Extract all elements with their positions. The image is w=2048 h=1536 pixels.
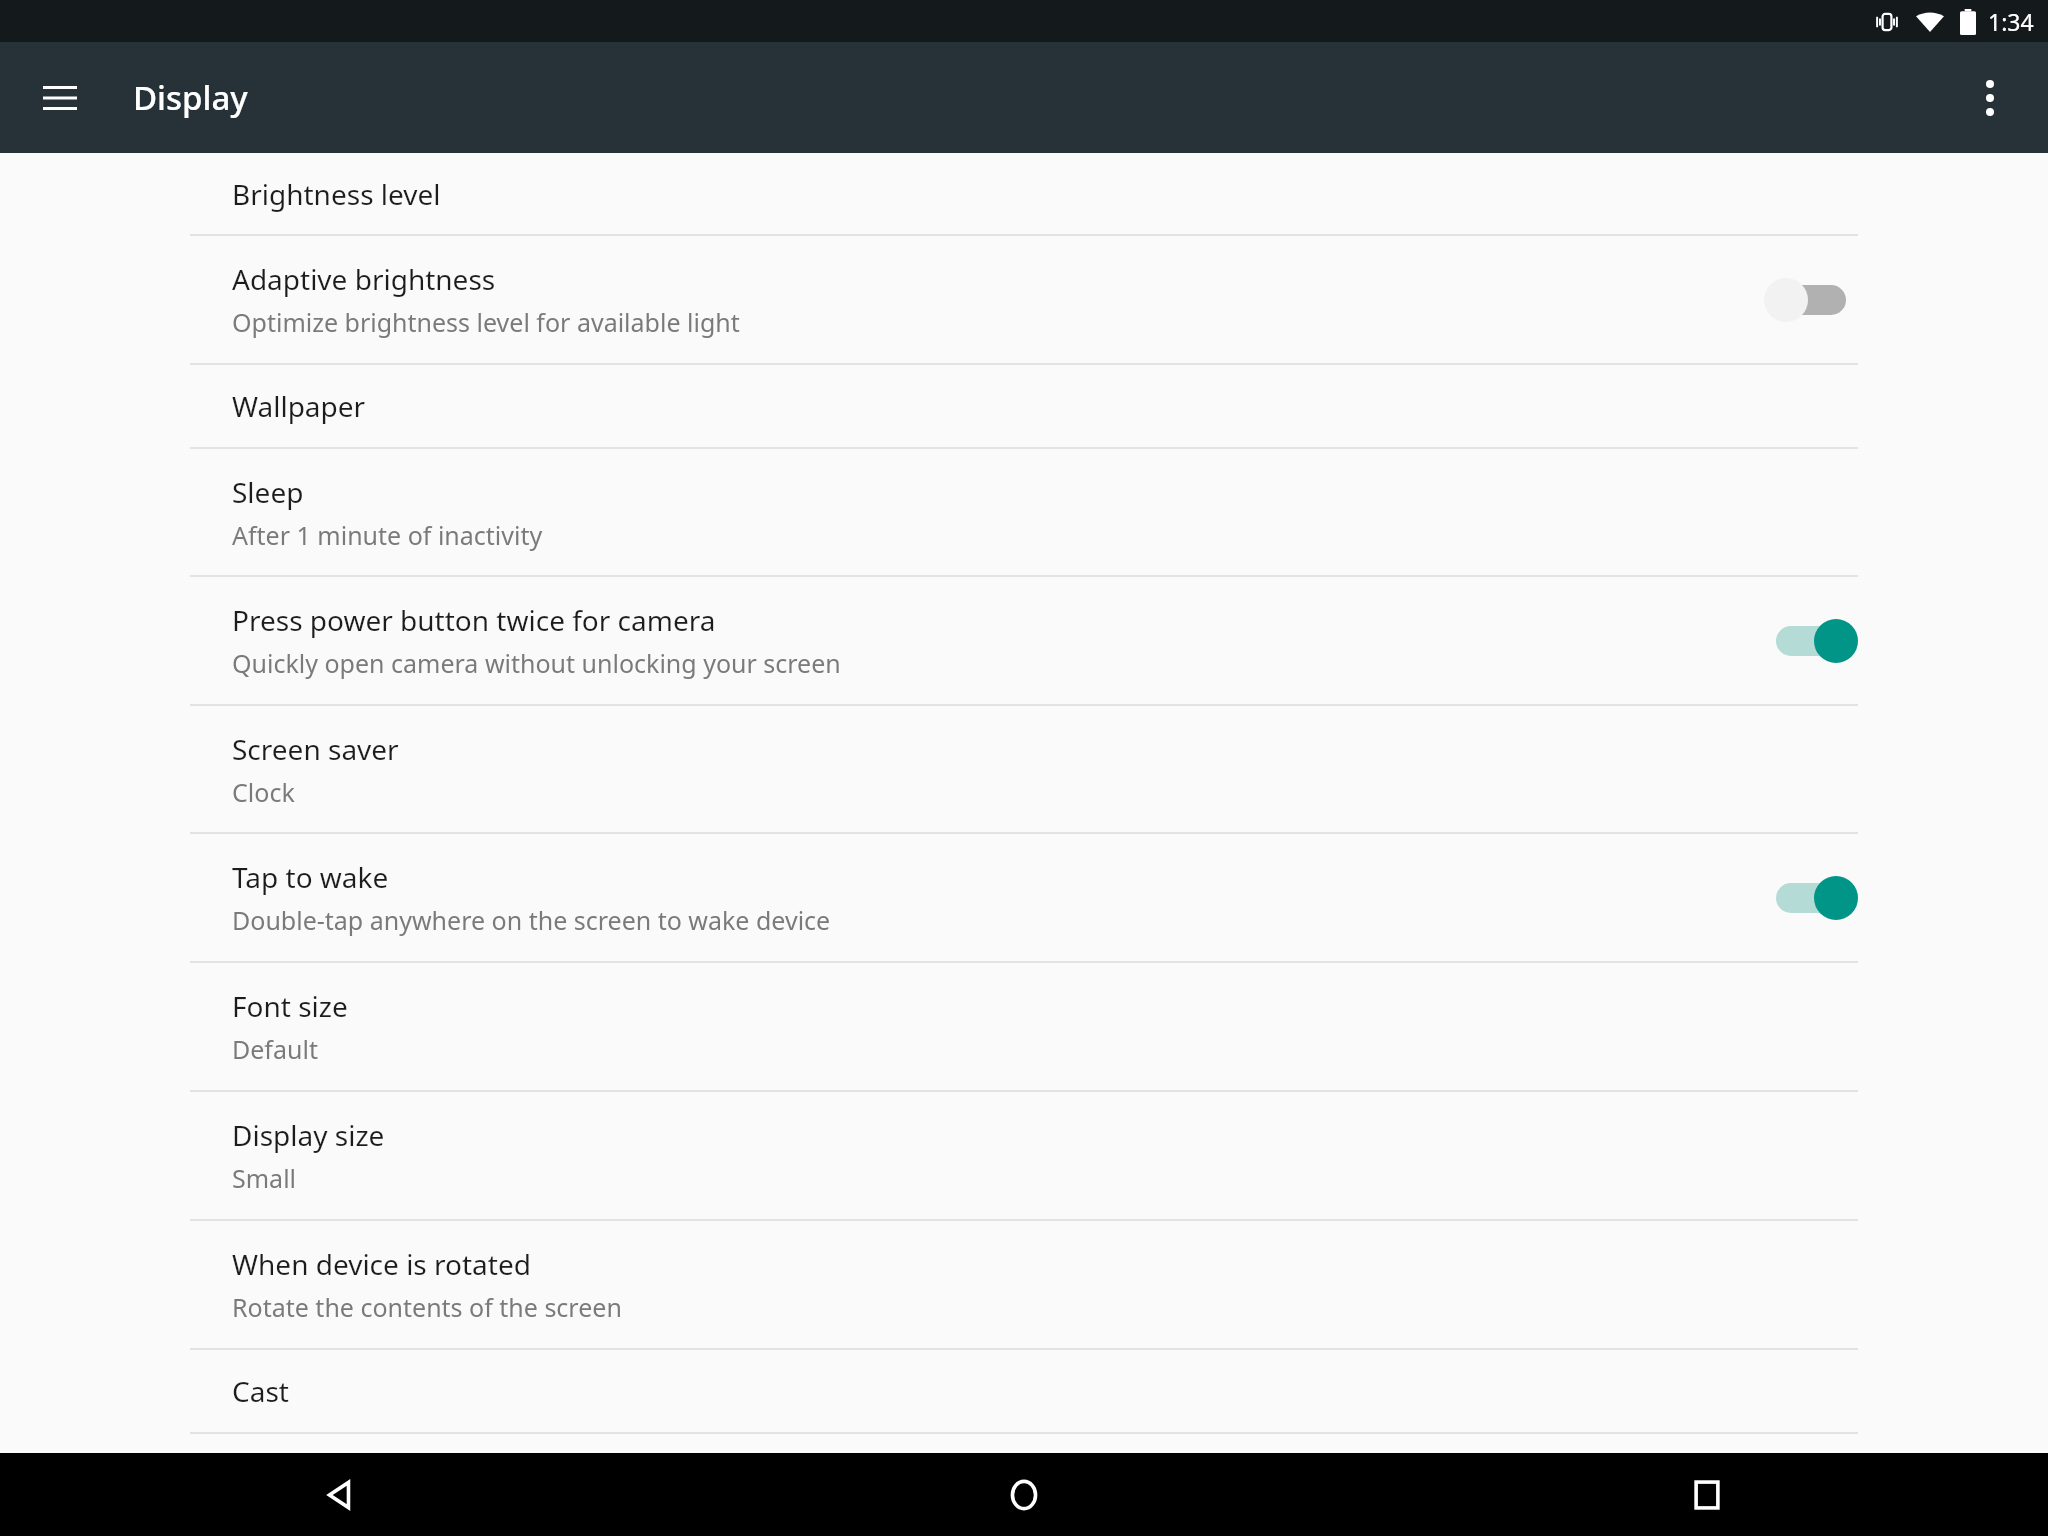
staticText: Wallpaper: [232, 387, 366, 425]
staticText: 1:34: [1988, 6, 2034, 37]
staticText: Press power button twice for camera: [232, 601, 716, 639]
button[interactable]: Toggle on: [1764, 870, 1858, 926]
button[interactable]: Press power button twice for camera: [0, 577, 2048, 704]
staticText: Tap to wake: [232, 858, 389, 896]
button[interactable]: Adaptive brightness: [0, 236, 2048, 363]
staticText: Small: [232, 1161, 297, 1195]
button[interactable]: Tap to wake: [0, 834, 2048, 961]
button[interactable]: When device is rotated: [0, 1221, 2048, 1348]
staticText: Brightness level: [232, 175, 441, 213]
button[interactable]: Brightness level: [0, 153, 2048, 234]
staticText: After 1 minute of inactivity: [232, 518, 543, 552]
staticText: When device is rotated: [232, 1245, 531, 1283]
staticText: Adaptive brightness: [232, 260, 496, 298]
staticText: Double-tap anywhere on the screen to wak…: [232, 903, 831, 937]
staticText: Clock: [232, 775, 295, 809]
button[interactable]: Home: [682, 1453, 1365, 1536]
staticText: Quickly open camera without unlocking yo…: [232, 646, 841, 680]
staticText: Display: [133, 75, 248, 120]
staticText: Display size: [232, 1116, 385, 1154]
staticText: Default: [232, 1032, 318, 1066]
button[interactable]: More options: [1954, 62, 2026, 134]
button[interactable]: Font size: [0, 963, 2048, 1090]
button[interactable]: Toggle off: [1764, 272, 1858, 328]
staticText: Sleep: [232, 473, 304, 511]
button[interactable]: Wallpaper: [0, 365, 2048, 447]
button[interactable]: Toggle on: [1764, 613, 1858, 669]
button[interactable]: Display size: [0, 1092, 2048, 1219]
button[interactable]: Cast: [0, 1350, 2048, 1432]
staticText: Font size: [232, 987, 348, 1025]
button[interactable]: Open navigation drawer: [24, 62, 96, 134]
button[interactable]: Recent apps: [1365, 1453, 2048, 1536]
button[interactable]: Sleep: [0, 449, 2048, 575]
button[interactable]: Screen saver: [0, 706, 2048, 832]
staticText: Cast: [232, 1372, 289, 1410]
button[interactable]: Back: [0, 1453, 682, 1536]
staticText: Optimize brightness level for available …: [232, 305, 740, 339]
staticText: Rotate the contents of the screen: [232, 1290, 622, 1324]
staticText: Screen saver: [232, 730, 399, 768]
